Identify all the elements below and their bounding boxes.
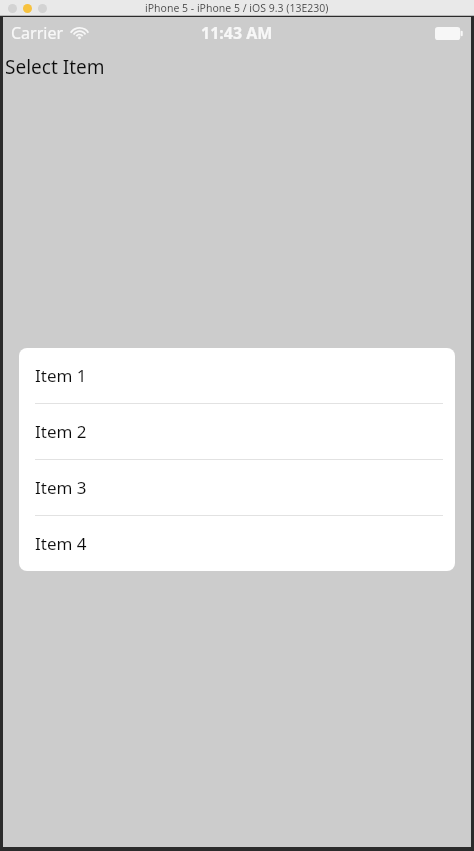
button[interactable]: Item 1	[19, 348, 455, 403]
staticText: Select Item	[5, 54, 105, 80]
staticText: Item 3	[35, 476, 87, 499]
button[interactable]: Item 4	[19, 516, 455, 571]
staticText: Carrier	[11, 22, 64, 44]
button[interactable]: Item 2	[19, 404, 455, 459]
other: Battery full	[435, 27, 463, 40]
staticText: Item 4	[35, 532, 87, 555]
staticText: Item 1	[35, 364, 87, 387]
staticText: iPhone 5 - iPhone 5 / iOS 9.3 (13E230)	[145, 1, 329, 15]
button[interactable]: Item 3	[19, 460, 455, 515]
staticText: Item 2	[35, 420, 87, 443]
other: Wi-Fi signal	[71, 27, 88, 40]
staticText: 11:43 AM	[201, 22, 273, 44]
